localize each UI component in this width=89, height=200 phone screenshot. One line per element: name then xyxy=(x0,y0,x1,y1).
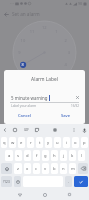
button[interactable]: Clear text xyxy=(74,94,81,101)
button[interactable]: j xyxy=(60,150,67,161)
staticText: ?123 xyxy=(3,180,10,184)
button[interactable]: k xyxy=(69,150,76,161)
button[interactable]: d xyxy=(24,150,31,161)
button[interactable]: a xyxy=(5,150,13,161)
button[interactable]: g xyxy=(42,150,49,161)
staticText: h xyxy=(53,153,56,159)
button[interactable]: Clipboard xyxy=(11,126,19,134)
staticText: GIF xyxy=(24,128,29,132)
button[interactable]: c xyxy=(33,163,40,174)
staticText: s xyxy=(17,153,20,159)
staticText: r xyxy=(30,140,32,146)
staticText: Alarm Label xyxy=(4,76,85,83)
staticText: l xyxy=(81,153,83,159)
staticText: a xyxy=(8,153,11,159)
button[interactable]: Home xyxy=(39,189,50,200)
button[interactable]: Back xyxy=(1,126,9,134)
staticText: u xyxy=(56,140,59,146)
button[interactable]: z xyxy=(14,163,22,174)
staticText: e xyxy=(20,140,23,146)
button[interactable]: b xyxy=(51,163,58,174)
button[interactable]: o xyxy=(72,137,79,148)
button[interactable]: Save xyxy=(60,112,72,120)
button[interactable]: Back xyxy=(14,189,25,200)
button[interactable]: w xyxy=(9,137,16,148)
staticText: g xyxy=(44,153,47,159)
button[interactable]: . xyxy=(65,176,72,187)
button[interactable]: ?123 xyxy=(1,176,12,187)
button[interactable]: y xyxy=(45,137,52,148)
staticText: m xyxy=(71,166,75,172)
button[interactable]: Stickers xyxy=(33,126,41,134)
button[interactable]: t xyxy=(36,137,43,148)
button[interactable]: Settings xyxy=(51,126,59,134)
button[interactable]: Enter xyxy=(74,176,88,187)
button[interactable]: q xyxy=(1,137,7,148)
staticText: Set an alarm xyxy=(12,11,40,17)
button[interactable]: r xyxy=(27,137,34,148)
button[interactable]: Recents xyxy=(64,189,75,200)
button[interactable]: i xyxy=(63,137,70,148)
staticText: Save xyxy=(61,113,71,119)
staticText: f xyxy=(36,153,38,159)
staticText: q xyxy=(3,140,6,146)
staticText: 98 xyxy=(78,1,83,6)
button[interactable]: Voice input xyxy=(80,126,88,134)
staticText: y xyxy=(47,140,50,146)
staticText: v xyxy=(44,166,47,172)
button[interactable]: v xyxy=(42,163,49,174)
button[interactable]: Shift xyxy=(1,163,12,174)
staticText: Cancel xyxy=(18,113,31,119)
button[interactable]: u xyxy=(54,137,61,148)
staticText: n xyxy=(62,166,65,172)
button[interactable]: s xyxy=(15,150,22,161)
button[interactable]: l xyxy=(78,150,85,161)
staticText: . xyxy=(68,179,70,184)
button[interactable]: m xyxy=(69,163,76,174)
staticText: c xyxy=(35,166,38,172)
button[interactable]: e xyxy=(18,137,25,148)
staticText: Label your alarm xyxy=(11,104,37,108)
staticText: b xyxy=(53,166,56,172)
button[interactable]: Backspace xyxy=(78,163,88,174)
staticText: x xyxy=(26,166,29,172)
button[interactable]: h xyxy=(51,150,58,161)
button[interactable]: More options xyxy=(70,126,78,134)
button[interactable]: x xyxy=(24,163,31,174)
button[interactable]: n xyxy=(60,163,67,174)
staticText: j xyxy=(63,153,65,159)
button[interactable]: Emoji xyxy=(14,176,21,187)
staticText: w xyxy=(11,140,15,146)
staticText: z xyxy=(17,166,19,172)
staticText: 16/32 xyxy=(71,104,79,108)
staticText: d xyxy=(26,153,29,159)
staticText: i xyxy=(66,140,68,146)
staticText: o xyxy=(74,140,77,146)
button[interactable]: Back xyxy=(1,9,11,19)
button[interactable]: GIF xyxy=(22,126,30,134)
staticText: 5 minute warning xyxy=(11,95,48,101)
button[interactable]: f xyxy=(33,150,40,161)
button[interactable]: Cancel xyxy=(17,112,32,120)
staticText: k xyxy=(71,153,74,159)
staticText: t xyxy=(39,140,41,146)
button[interactable]: p xyxy=(81,137,88,148)
staticText: p xyxy=(83,140,86,146)
